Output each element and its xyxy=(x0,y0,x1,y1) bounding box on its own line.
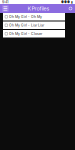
staticText: ●●● ▮ xyxy=(61,0,73,4)
staticText: Oh My Girl - Liar Liar xyxy=(9,23,44,27)
staticText: Oh My Girl - Closer xyxy=(9,32,42,36)
button[interactable]: Oh My Girl - Closer xyxy=(3,30,65,37)
button[interactable]: Search xyxy=(68,6,73,11)
staticText: 9:41 xyxy=(2,0,9,4)
staticText: KProfiles xyxy=(27,5,49,12)
button[interactable]: Oh My Girl - Oh My xyxy=(3,13,65,20)
button[interactable]: Oh My Girl - Liar Liar xyxy=(3,21,65,29)
button[interactable]: Menu xyxy=(2,5,9,12)
staticText: Oh My Girl - Oh My xyxy=(9,15,42,19)
